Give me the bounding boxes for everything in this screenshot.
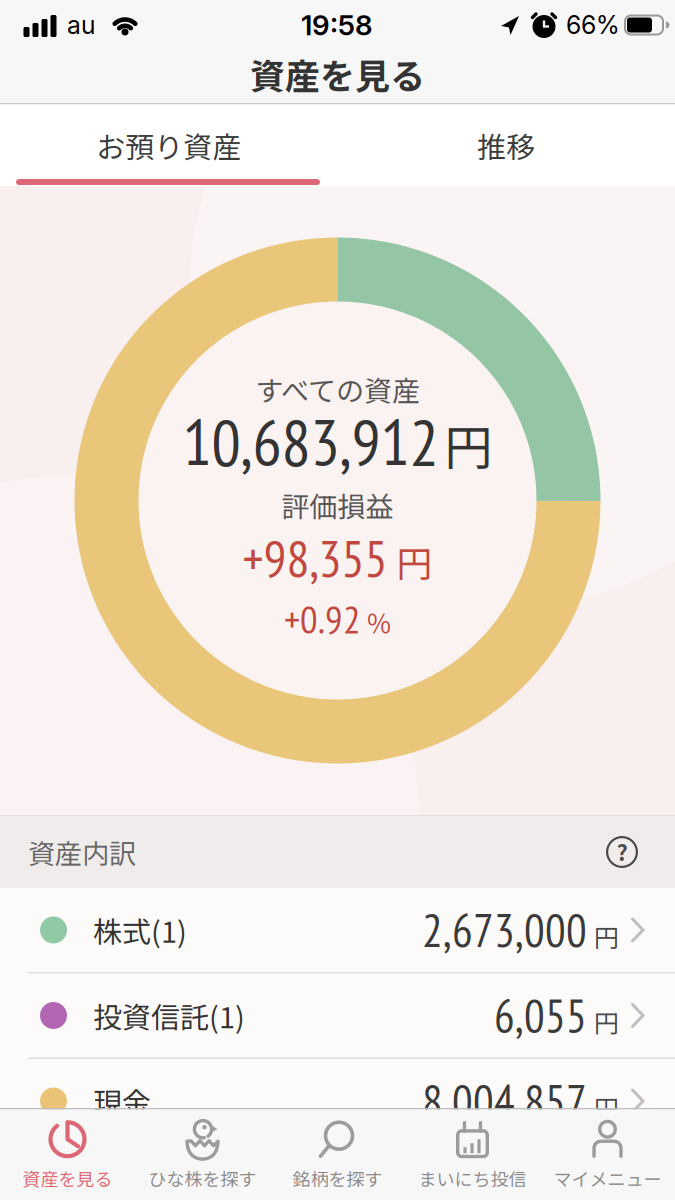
staticText: 現金 [93,1080,151,1122]
button[interactable]: 株式(1) [0,888,675,972]
staticText: au [67,10,95,40]
staticText: 評価損益 [281,485,393,525]
staticText: マイメニュー [553,1165,661,1191]
staticText: 66% [566,10,620,40]
staticText: 8,004,857 [422,1071,587,1131]
staticText: 円 [594,1089,619,1125]
staticText: 推移 [477,124,535,166]
staticText: 2,673,000 [422,900,587,960]
staticText: 資産を見る [22,1165,112,1191]
button[interactable]: 推移 [337,104,675,186]
button[interactable]: 銘柄を探す [270,1111,405,1199]
staticText: 円 [444,409,492,479]
staticText: 円 [594,918,619,954]
button[interactable]: 資産を見る [0,1111,135,1199]
staticText: 資産を見る [250,49,425,99]
button[interactable]: ひな株を探す [135,1111,270,1199]
staticText: すべての資産 [255,369,420,409]
staticText: +0.92 [284,594,361,644]
staticText: お預り資産 [96,124,241,166]
staticText: まいにち投信 [418,1165,526,1191]
staticText: 10,683,912 [182,399,438,483]
button[interactable]: 現金 [0,1059,675,1143]
button[interactable]: ? [606,836,675,868]
staticText: 円 [594,1004,619,1040]
staticText: 株式(1) [93,909,187,951]
staticText: % [367,603,391,641]
staticText: 6,055 [494,986,587,1045]
staticText: 資産内訳 [28,832,136,872]
staticText: +98,355 [242,525,387,591]
button[interactable]: お預り資産 [0,104,337,186]
button[interactable]: まいにち投信 [405,1111,540,1199]
button[interactable]: マイメニュー [540,1111,675,1199]
staticText: ひな株を探す [148,1165,256,1191]
staticText: 銘柄を探す [292,1165,382,1191]
staticText: 投資信託(1) [93,994,245,1036]
button[interactable]: 投資信託(1) [0,973,675,1057]
staticText: 円 [396,535,432,587]
staticText: 19:58 [301,8,373,42]
staticText: ? [616,836,627,867]
